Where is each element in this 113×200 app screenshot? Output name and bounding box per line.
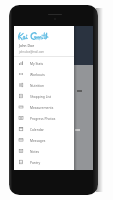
button[interactable]: Workouts — [14, 68, 74, 79]
staticText: john.doe@mail.com — [19, 50, 45, 54]
staticText: John Doe — [19, 43, 35, 48]
staticText: Shopping List — [30, 94, 52, 98]
staticText: Notes — [30, 149, 40, 153]
staticText: My Stats — [30, 61, 44, 65]
button[interactable]: My Stats — [14, 57, 74, 68]
button[interactable]: Progress Photos — [14, 112, 74, 123]
button[interactable]: Messages — [14, 134, 74, 145]
staticText: Progress Photos — [30, 116, 56, 120]
button[interactable]: Calendar — [14, 123, 74, 134]
button[interactable]: Measurements — [14, 101, 74, 112]
staticText: Pantry — [30, 160, 41, 164]
button[interactable]: Notes — [14, 145, 74, 156]
button[interactable]: Nutrition — [14, 79, 74, 90]
staticText: Messages — [30, 138, 46, 142]
staticText: Nutrition — [30, 83, 45, 87]
staticText: Measurements — [30, 105, 54, 109]
button[interactable]: Shopping List — [14, 90, 74, 101]
button[interactable]: Pantry — [14, 156, 74, 167]
staticText: Workouts — [30, 72, 45, 76]
staticText: Calendar — [30, 127, 44, 131]
